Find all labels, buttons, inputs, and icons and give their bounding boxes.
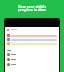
staticText: View your child's progress in class bbox=[3, 4, 61, 12]
button[interactable] bbox=[7, 28, 57, 31]
button[interactable] bbox=[7, 42, 57, 45]
button[interactable] bbox=[7, 57, 57, 61]
button[interactable] bbox=[7, 62, 57, 66]
button[interactable] bbox=[7, 34, 57, 37]
button[interactable] bbox=[7, 38, 57, 41]
button[interactable] bbox=[7, 52, 57, 56]
